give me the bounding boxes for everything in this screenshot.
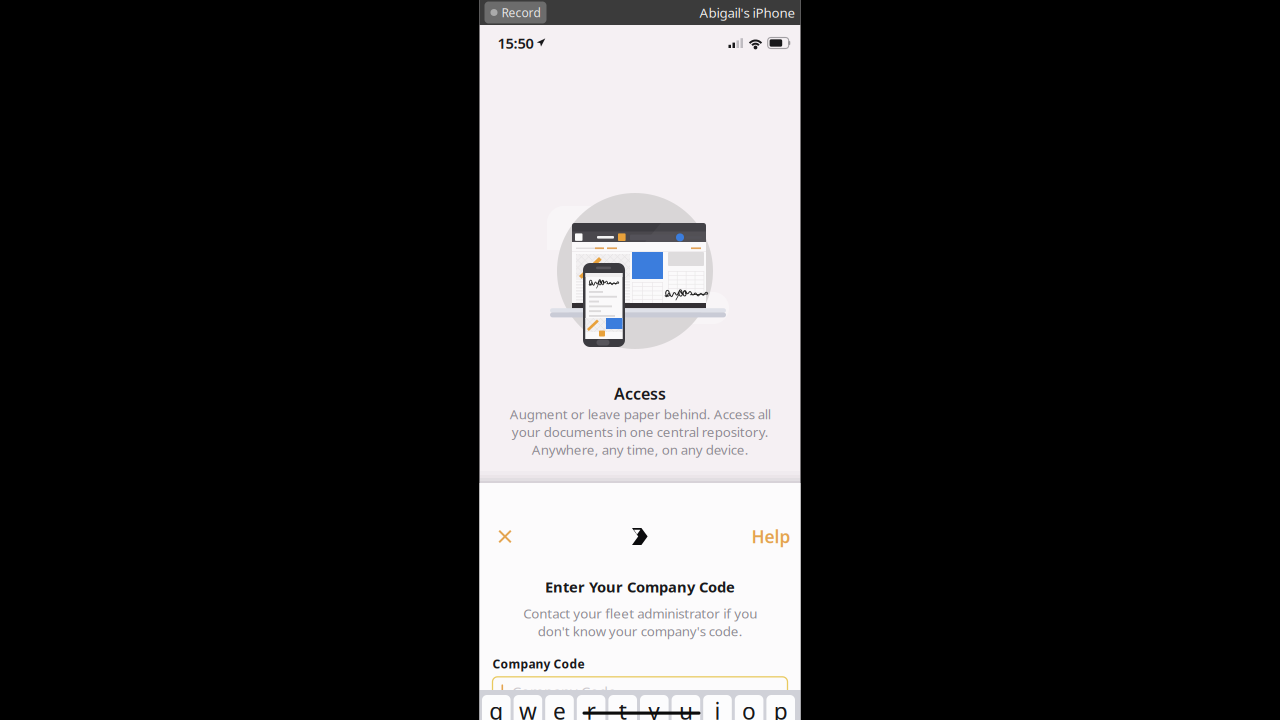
staticText: Access: [614, 383, 666, 404]
button[interactable]: e: [545, 690, 574, 720]
staticText: q: [489, 696, 503, 720]
staticText: p: [774, 696, 788, 720]
staticText: Enter Your Company Code: [545, 577, 735, 596]
staticText: Augment or leave paper behind. Access al…: [509, 405, 770, 458]
button[interactable]: q: [482, 690, 511, 720]
staticText: o: [742, 696, 756, 720]
staticText: u: [679, 696, 693, 720]
button[interactable]: p: [766, 690, 795, 720]
button[interactable]: y: [640, 690, 669, 720]
staticText: Contact your fleet administrator if you …: [523, 604, 757, 640]
button[interactable]: Close: [487, 522, 522, 551]
button[interactable]: Help: [749, 518, 792, 555]
staticText: 15:50: [497, 33, 533, 53]
button[interactable]: t: [608, 690, 637, 720]
staticText: y: [648, 696, 660, 720]
button[interactable]: u: [672, 690, 700, 720]
button[interactable]: w: [514, 690, 542, 720]
button[interactable]: Record: [484, 1, 546, 23]
staticText: t: [619, 696, 627, 720]
staticText: i: [714, 696, 720, 720]
staticText: w: [519, 696, 537, 720]
button[interactable]: i: [703, 690, 732, 720]
button[interactable]: o: [735, 690, 763, 720]
staticText: Company Code: [492, 656, 584, 672]
staticText: e: [553, 696, 566, 720]
staticText: Abigail's iPhone: [699, 4, 795, 21]
staticText: r: [587, 696, 596, 720]
staticText: Record: [501, 4, 540, 20]
staticText: Company Code: [512, 682, 616, 702]
staticText: Help: [751, 525, 790, 548]
button[interactable]: r: [577, 690, 605, 720]
